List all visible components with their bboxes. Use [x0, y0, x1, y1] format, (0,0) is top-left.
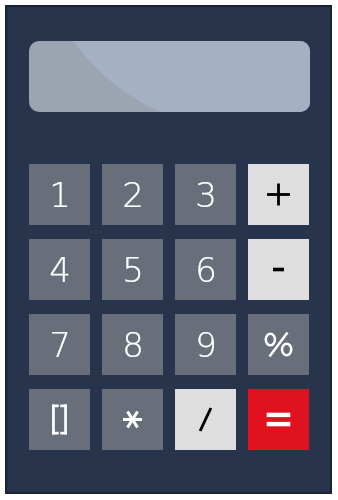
button[interactable]: 7: [29, 314, 90, 375]
button[interactable]: %: [248, 314, 309, 375]
staticText: 3: [195, 175, 217, 215]
button[interactable]: 8: [102, 314, 163, 375]
button[interactable]: *: [102, 389, 163, 450]
staticText: 1: [49, 175, 71, 215]
button[interactable]: Display: [29, 41, 310, 112]
button[interactable]: 9: [175, 314, 236, 375]
staticText: 2: [122, 175, 144, 215]
button[interactable]: /: [175, 389, 236, 450]
staticText: 9: [195, 325, 217, 365]
button[interactable]: 5: [102, 239, 163, 300]
button[interactable]: 3: [175, 164, 236, 225]
button[interactable]: 2: [102, 164, 163, 225]
button[interactable]: =: [248, 389, 309, 450]
button[interactable]: -: [248, 239, 309, 300]
button[interactable]: 4: [29, 239, 90, 300]
staticText: 5: [122, 250, 144, 290]
button[interactable]: +: [248, 164, 309, 225]
staticText: 4: [49, 250, 71, 290]
staticText: 8: [122, 325, 144, 365]
button[interactable]: 1: [29, 164, 90, 225]
button[interactable]: 6: [175, 239, 236, 300]
staticText: 6: [195, 250, 217, 290]
button[interactable]: []: [29, 389, 90, 450]
staticText: 7: [49, 325, 71, 365]
